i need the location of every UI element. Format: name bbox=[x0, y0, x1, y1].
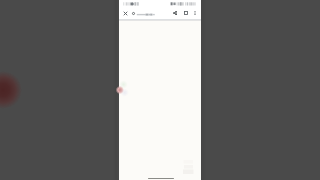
button[interactable] bbox=[136, 8, 171, 19]
button[interactable]: More options bbox=[191, 9, 199, 17]
button[interactable]: Close bbox=[121, 9, 129, 17]
button[interactable]: Share bbox=[171, 9, 179, 17]
button[interactable]: Open in browser bbox=[182, 9, 190, 17]
button[interactable]: Site information bbox=[129, 9, 137, 17]
